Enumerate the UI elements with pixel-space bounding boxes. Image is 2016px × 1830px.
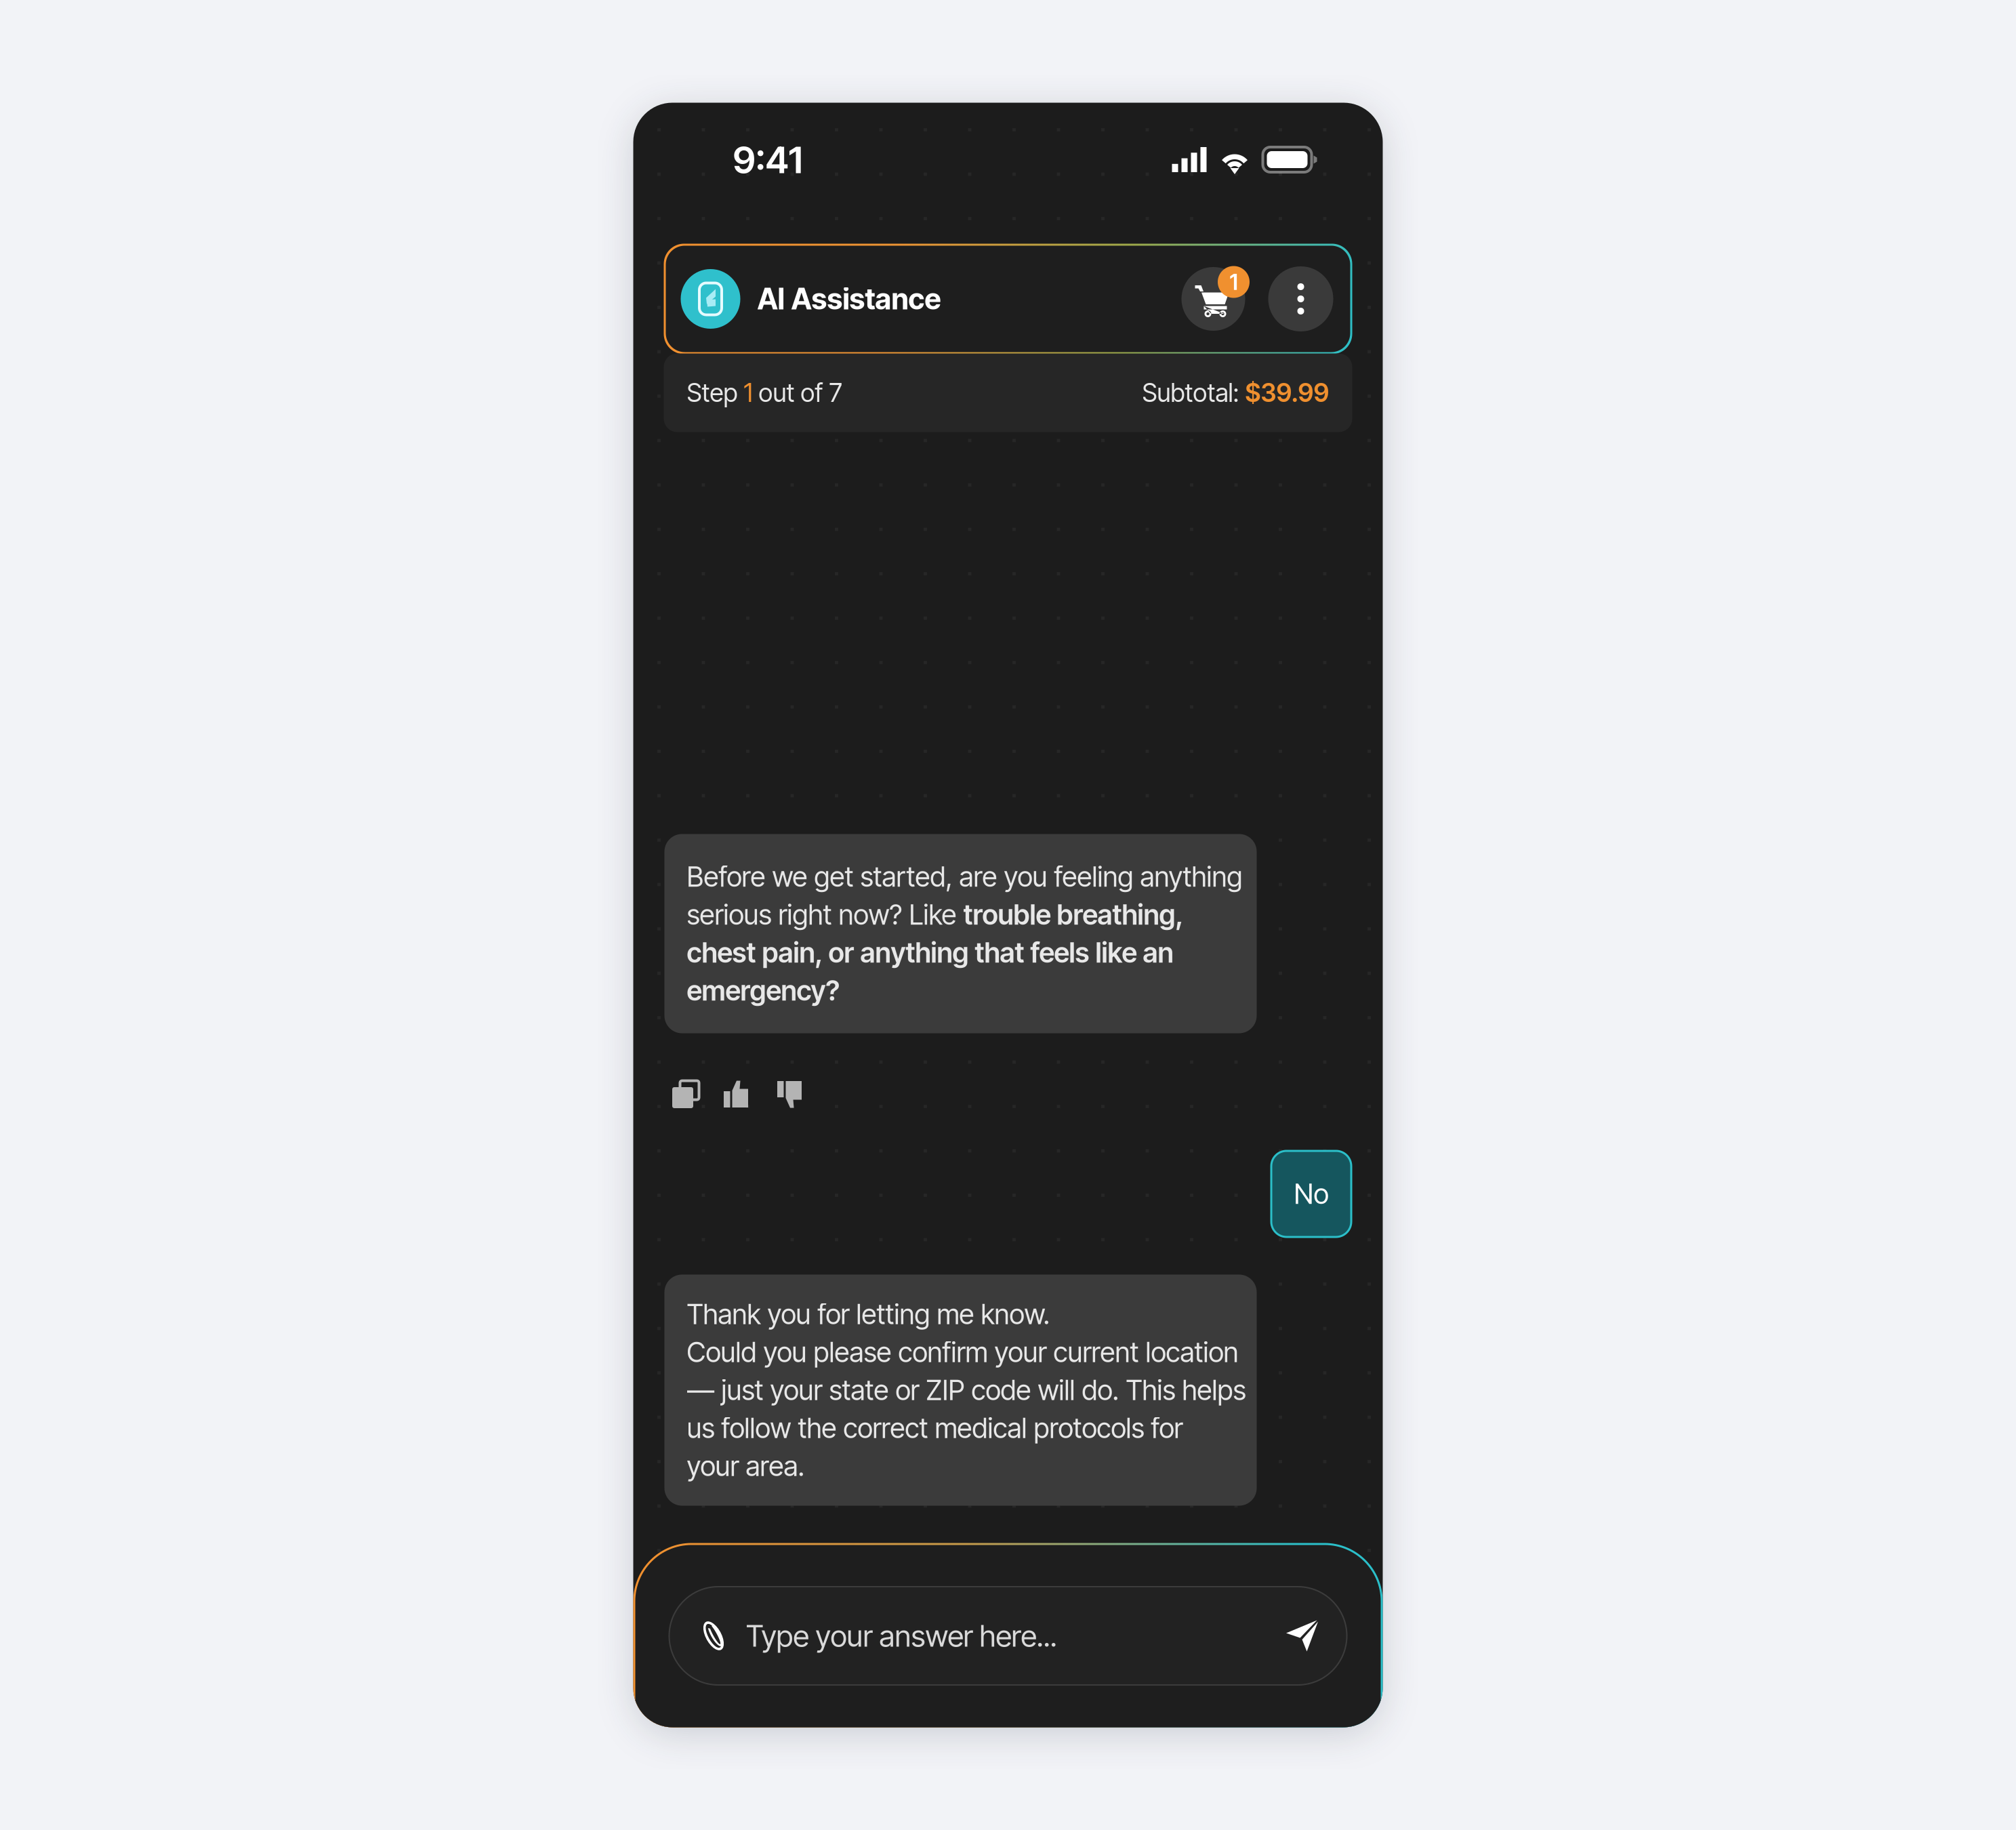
button[interactable]: Attach a file xyxy=(693,1586,735,1686)
button[interactable]: More options xyxy=(1268,266,1333,331)
staticText: Thank you for letting me know. xyxy=(687,1298,1050,1331)
staticText: your area. xyxy=(687,1449,805,1483)
button[interactable]: Bad response xyxy=(777,1079,804,1110)
staticText: $39.99 xyxy=(1245,377,1329,408)
staticText: Before we get started, are you feeling a… xyxy=(687,860,1242,893)
staticText: Step xyxy=(687,377,744,408)
staticText: emergency? xyxy=(687,974,840,1007)
staticText: trouble breathing, xyxy=(963,898,1184,931)
button[interactable]: No xyxy=(1270,1150,1352,1238)
staticText: 9:41 xyxy=(733,137,803,182)
staticText: — just your state or ZIP code will do. T… xyxy=(687,1373,1246,1407)
staticText: chest pain, or anything that feels like … xyxy=(687,936,1173,969)
button[interactable]: Good response xyxy=(723,1079,750,1110)
button[interactable]: Cart, 1 item xyxy=(1181,267,1245,331)
staticText: Type your answer here... xyxy=(746,1618,1057,1654)
staticText: us follow the correct medical protocols … xyxy=(687,1411,1183,1445)
staticText: out of 7 xyxy=(753,377,842,408)
staticText: Subtotal: xyxy=(1142,377,1245,408)
staticText: serious right now? Like xyxy=(687,898,963,931)
staticText: 1 xyxy=(744,377,753,408)
staticText: Could you please confirm your current lo… xyxy=(687,1335,1238,1369)
button[interactable]: Copy xyxy=(671,1079,700,1110)
staticText: No xyxy=(1294,1177,1329,1211)
staticText: 1 xyxy=(1230,269,1238,295)
staticText: AI Assistance xyxy=(757,281,941,316)
button[interactable]: Send xyxy=(1281,1586,1323,1686)
